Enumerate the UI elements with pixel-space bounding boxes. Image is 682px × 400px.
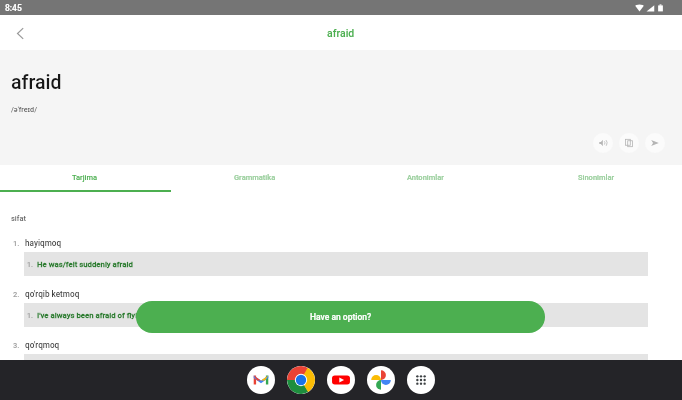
staticText: 1. — [27, 261, 33, 269]
staticText: Antonimlar — [407, 173, 444, 182]
button[interactable]: Pronounce — [593, 133, 613, 153]
staticText: Grammatika — [234, 173, 276, 182]
button[interactable]: 2. — [0, 289, 682, 299]
staticText: afraid — [327, 27, 355, 39]
staticText: hayiqmoq — [25, 238, 62, 248]
staticText: 3. — [13, 341, 20, 350]
button[interactable]: All apps — [407, 366, 435, 394]
staticText: I've always been afraid of flying — [37, 311, 146, 320]
staticText: 2. — [13, 290, 20, 299]
button[interactable]: Back — [6, 19, 34, 47]
staticText: qo'rqmoq — [25, 340, 60, 350]
staticText: Have an option? — [310, 312, 372, 322]
staticText: Sinonimlar — [578, 173, 615, 182]
button[interactable]: 1. — [0, 238, 682, 248]
staticText: sifat — [11, 214, 27, 223]
staticText: Tarjima — [72, 173, 98, 182]
button[interactable]: Sinonimlar — [511, 165, 682, 190]
button[interactable]: Grammatika — [170, 165, 340, 190]
staticText: /əˈfreɪd/ — [11, 105, 37, 113]
button[interactable]: Antonimlar — [340, 165, 511, 190]
staticText: 1. — [13, 239, 20, 248]
staticText: 8:45 — [5, 3, 22, 13]
button[interactable]: Have an option? — [136, 301, 545, 333]
button[interactable]: Chrome — [287, 366, 315, 394]
button[interactable]: Tarjima — [0, 165, 170, 190]
button[interactable]: YouTube — [327, 366, 355, 394]
staticText: He was/felt suddenly afraid — [37, 260, 133, 269]
button[interactable]: Copy — [619, 133, 639, 153]
button[interactable]: 1. — [24, 252, 648, 276]
staticText: qo'rqib ketmoq — [25, 289, 80, 299]
staticText: afraid — [11, 71, 62, 94]
button[interactable]: 1. — [24, 303, 648, 327]
button[interactable]: Gmail — [247, 366, 275, 394]
button[interactable]: Share — [645, 133, 665, 153]
button[interactable]: 3. — [0, 340, 682, 350]
button[interactable]: Photos — [367, 366, 395, 394]
staticText: 1. — [27, 312, 33, 320]
